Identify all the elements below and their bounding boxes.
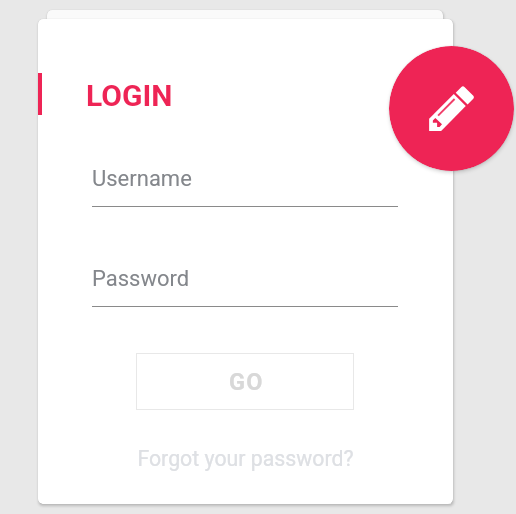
button[interactable]: GO: [136, 353, 354, 410]
button[interactable]: Edit: [389, 46, 514, 171]
staticText: Forgot your password?: [137, 446, 354, 471]
button[interactable]: Forgot your password?: [116, 436, 374, 480]
staticText: Password: [92, 266, 190, 292]
button[interactable]: Username: [92, 162, 398, 207]
staticText: GO: [229, 368, 264, 396]
staticText: Username: [92, 166, 192, 192]
staticText: LOGIN: [86, 78, 173, 113]
button[interactable]: Password: [92, 262, 398, 307]
